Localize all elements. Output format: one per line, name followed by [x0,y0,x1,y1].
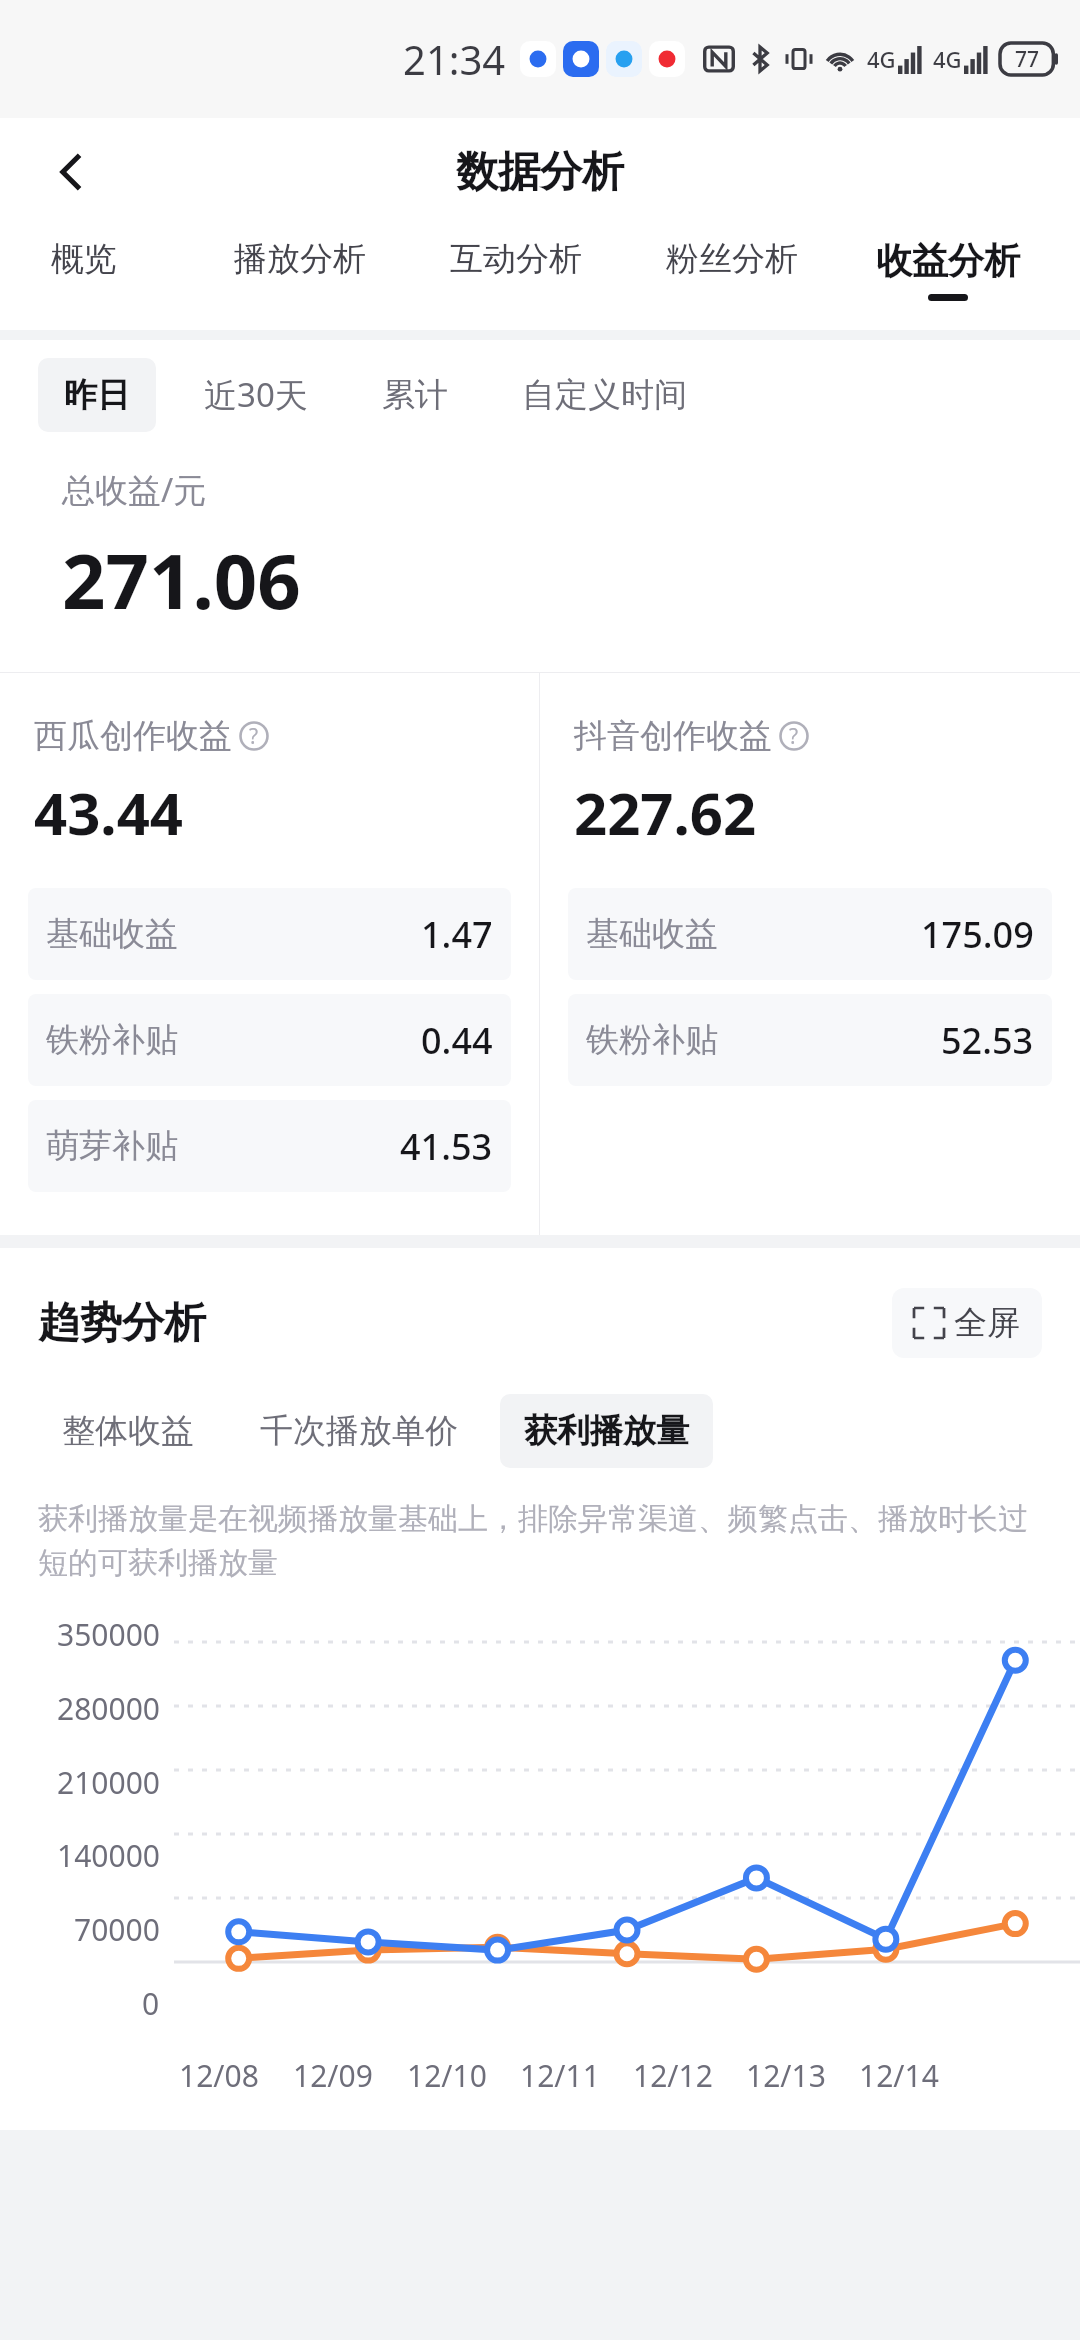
staticText: 140000 [57,1835,160,1876]
staticText: 77 [1015,45,1040,74]
staticText: 粉丝分析 [666,238,798,280]
staticText: 抖音创作收益 [574,715,772,757]
button[interactable]: 获利播放量 [500,1394,713,1468]
staticText: 获利播放量 [524,1410,689,1452]
staticText: 全屏 [954,1302,1020,1344]
staticText: 获利播放量是在视频播放量基础上，排除异常渠道、频繁点击、播放时长过短的可获利播放… [38,1500,1042,1582]
staticText: 0 [142,1983,160,2024]
staticText: ? [249,722,259,751]
staticText: 280000 [57,1688,160,1729]
staticText: 21:34 [403,32,506,86]
staticText: 12/12 [633,2055,713,2096]
staticText: 12/14 [859,2055,939,2096]
staticText: 数据分析 [456,146,624,199]
staticText: 12/08 [179,2055,259,2096]
staticText: 12/11 [520,2055,600,2096]
button[interactable]: 千次播放单价 [236,1394,482,1468]
button[interactable]: 自定义时间 [496,358,713,432]
button[interactable]: 互动分析 [408,226,624,330]
staticText: 12/10 [407,2055,487,2096]
staticText: 昨日 [64,374,130,416]
staticText: 41.53 [400,1122,493,1171]
button[interactable]: Back [34,134,110,210]
staticText: 43.44 [34,773,184,852]
staticText: 概览 [51,238,117,280]
staticText: 4G [867,44,896,74]
staticText: 自定义时间 [522,374,687,416]
staticText: 0.44 [421,1016,493,1065]
staticText: 4G [933,44,962,74]
staticText: 基础收益 [586,913,718,955]
staticText: ? [789,722,799,751]
button[interactable]: 萌芽补贴 [28,1100,511,1192]
staticText: 萌芽补贴 [46,1125,178,1167]
button[interactable]: 昨日 [38,358,156,432]
staticText: 千次播放单价 [260,1410,458,1452]
staticText: 总收益/元 [62,467,207,512]
staticText: 互动分析 [450,238,582,280]
staticText: 52.53 [941,1016,1034,1065]
staticText: 西瓜创作收益 [34,715,232,757]
staticText: 175.09 [921,910,1034,959]
staticText: 铁粉补贴 [586,1019,718,1061]
staticText: 收益分析 [876,238,1020,283]
staticText: 基础收益 [46,913,178,955]
staticText: 70000 [74,1909,160,1950]
staticText: 210000 [57,1762,160,1803]
button[interactable]: 全屏 [892,1288,1042,1358]
staticText: 227.62 [574,773,757,852]
button[interactable]: 基础收益 [28,888,511,980]
staticText: 铁粉补贴 [46,1019,178,1061]
staticText: 近30天 [204,372,308,417]
staticText: 趋势分析 [38,1297,206,1350]
button[interactable]: 说明 [239,721,269,751]
button[interactable]: 粉丝分析 [624,226,840,330]
button[interactable]: 说明 [779,721,809,751]
button[interactable]: 累计 [356,358,474,432]
button[interactable]: 铁粉补贴 [568,994,1052,1086]
staticText: 整体收益 [62,1410,194,1452]
staticText: 12/13 [746,2055,826,2096]
button[interactable]: 基础收益 [568,888,1052,980]
staticText: 271.06 [62,528,301,632]
staticText: 累计 [382,374,448,416]
button[interactable]: 整体收益 [38,1394,218,1468]
button[interactable]: 播放分析 [192,226,408,330]
staticText: 播放分析 [234,238,366,280]
staticText: 12/09 [293,2055,373,2096]
staticText: 1.47 [421,910,493,959]
button[interactable]: 概览 [0,226,192,330]
button[interactable]: 收益分析 [840,226,1056,330]
button[interactable]: 近30天 [178,356,334,433]
button[interactable]: 铁粉补贴 [28,994,511,1086]
staticText: 350000 [57,1614,160,1655]
